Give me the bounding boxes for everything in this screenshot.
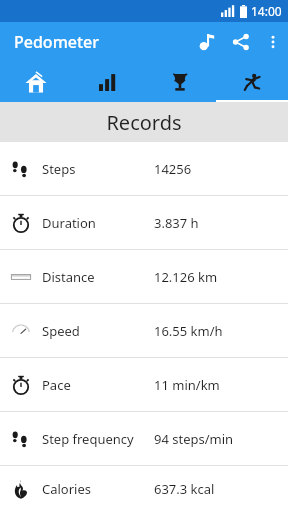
button[interactable]: Distance	[0, 250, 288, 304]
staticText: 11 min/km	[154, 376, 220, 394]
staticText: 12.126 km	[154, 268, 218, 286]
button[interactable]: Duration	[0, 196, 288, 250]
button[interactable]: Step frequency	[0, 412, 288, 466]
button[interactable]: Pace	[0, 358, 288, 412]
staticText: 14256	[154, 160, 192, 178]
staticText: Speed	[42, 322, 80, 340]
staticText: Duration	[42, 214, 96, 232]
staticText: Steps	[42, 160, 76, 178]
staticText: Step frequency	[42, 430, 134, 448]
staticText: Pedometer	[14, 31, 100, 53]
button[interactable]: Calories	[0, 466, 288, 512]
button[interactable]: More options	[258, 27, 288, 57]
button[interactable]: Home	[0, 62, 72, 102]
staticText: Pace	[42, 376, 71, 394]
staticText: Calories	[42, 480, 92, 498]
button[interactable]: Statistics	[72, 62, 144, 102]
staticText: 14:00	[251, 3, 282, 19]
staticText: Records	[106, 109, 182, 136]
staticText: Distance	[42, 268, 95, 286]
button[interactable]: Music	[190, 25, 224, 59]
button[interactable]: Share	[224, 25, 258, 59]
staticText: 94 steps/min	[154, 430, 234, 448]
staticText: 637.3 kcal	[154, 480, 215, 498]
staticText: 16.55 km/h	[154, 322, 223, 340]
button[interactable]: Activity	[216, 62, 288, 102]
button[interactable]: Achievements	[144, 62, 216, 102]
staticText: 3.837 h	[154, 214, 199, 232]
button[interactable]: Steps	[0, 142, 288, 196]
button[interactable]: Speed	[0, 304, 288, 358]
